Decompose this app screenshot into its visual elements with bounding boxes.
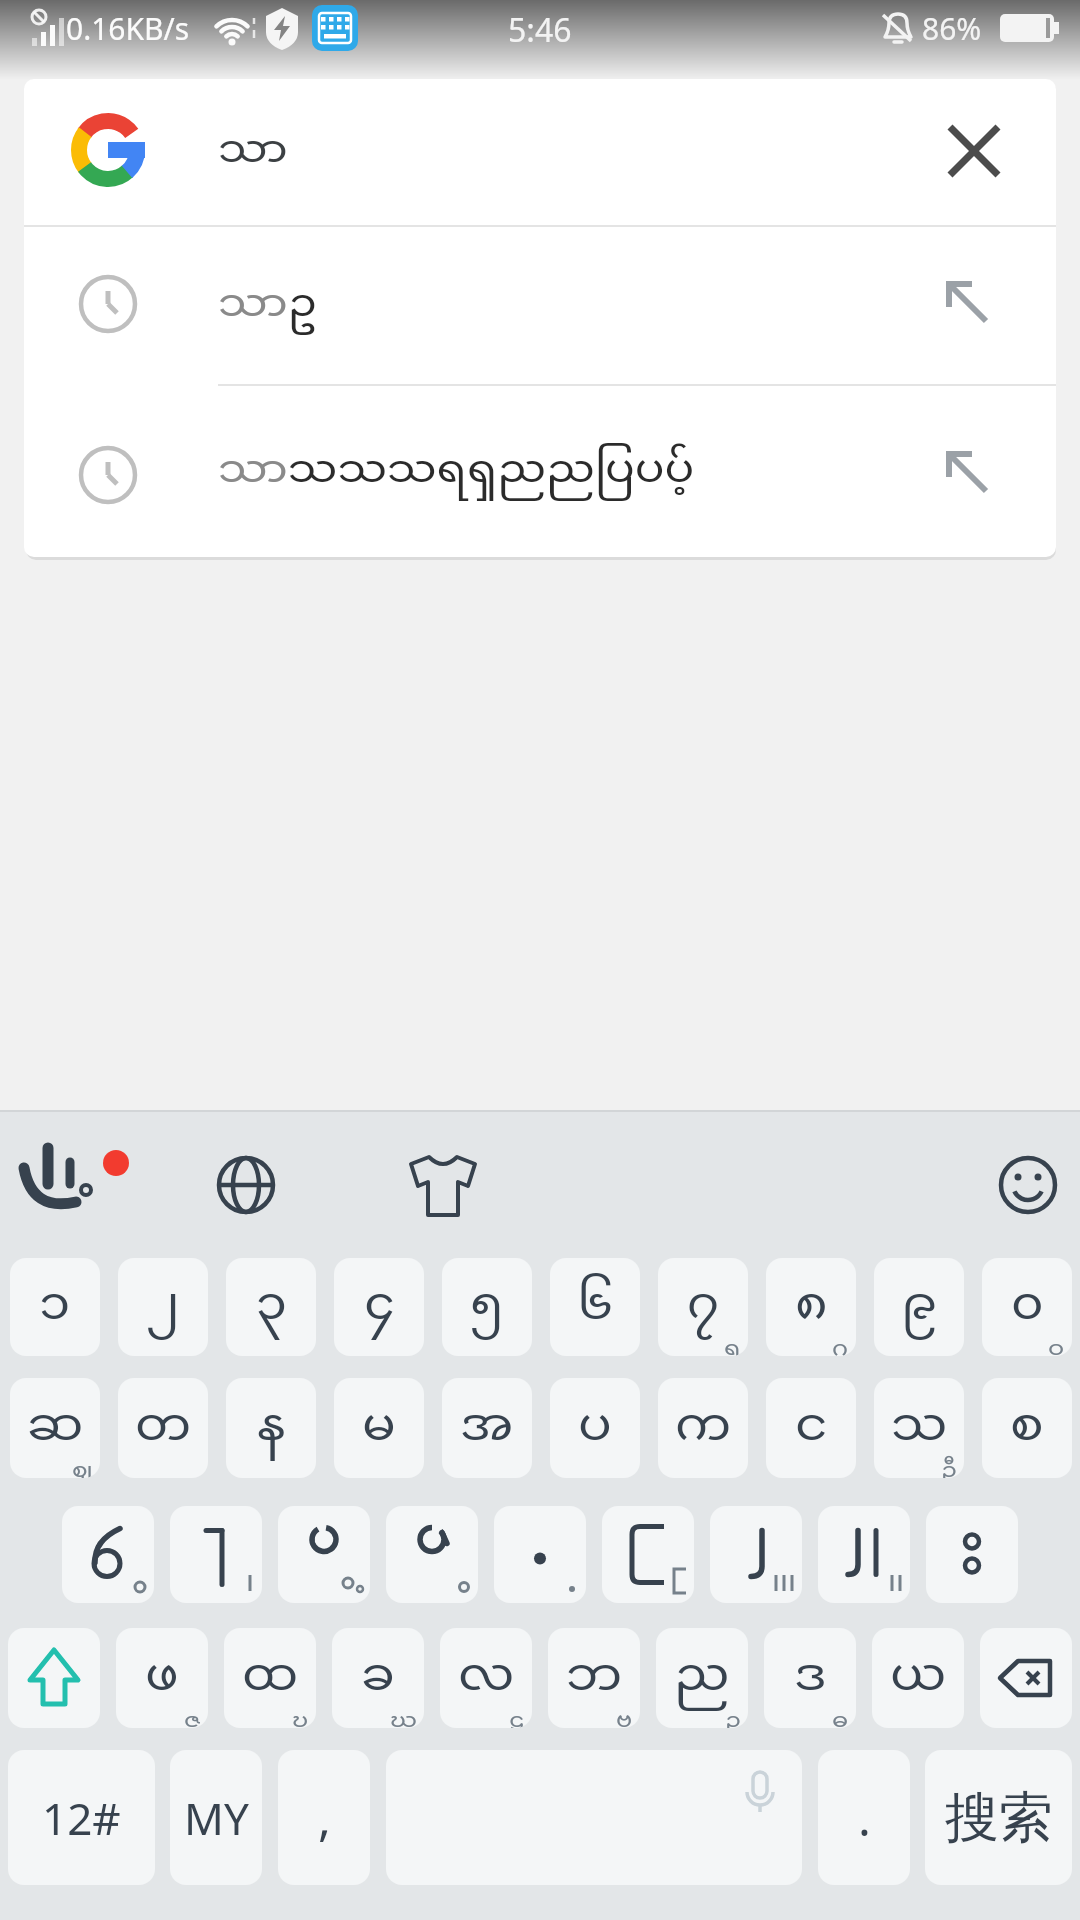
- staticText: ည: [674, 1644, 730, 1712]
- button[interactable]: သ: [874, 1378, 964, 1478]
- button[interactable]: လ: [440, 1628, 532, 1728]
- staticText: လ: [458, 1644, 515, 1712]
- button[interactable]: [214, 1153, 278, 1217]
- staticText: ၈: [795, 1273, 828, 1341]
- button[interactable]: [980, 1628, 1072, 1728]
- staticText: ဖ: [145, 1644, 179, 1712]
- staticText: အ: [460, 1394, 514, 1462]
- button[interactable]: [602, 1506, 694, 1603]
- button[interactable]: ၀: [982, 1258, 1072, 1356]
- button[interactable]: [938, 115, 1010, 187]
- staticText: မ: [362, 1394, 396, 1462]
- button[interactable]: ,: [278, 1750, 370, 1885]
- button[interactable]: ပ: [550, 1378, 640, 1478]
- staticText: ဃ: [390, 1705, 417, 1728]
- staticText: ၄: [364, 1273, 395, 1341]
- button[interactable]: [710, 1506, 802, 1603]
- staticText: ရ: [724, 1333, 741, 1356]
- staticText: ဦ: [941, 1455, 957, 1478]
- staticText: ဠ: [509, 1705, 525, 1728]
- staticText: က: [675, 1394, 732, 1462]
- staticText: 0.16KB/s: [66, 8, 190, 48]
- button[interactable]: [24, 227, 1056, 384]
- button[interactable]: က: [658, 1378, 748, 1478]
- staticText: င: [795, 1394, 828, 1462]
- button[interactable]: ည: [656, 1628, 748, 1728]
- staticText: MY: [184, 1788, 249, 1848]
- staticText: ဂ: [832, 1333, 849, 1356]
- staticText: ၆: [577, 1273, 613, 1341]
- staticText: ၃: [256, 1273, 287, 1341]
- staticText: ဝ: [1048, 1333, 1065, 1356]
- button[interactable]: စ: [982, 1378, 1072, 1478]
- button[interactable]: ၇: [658, 1258, 748, 1356]
- staticText: ၂: [146, 1273, 180, 1341]
- button[interactable]: [494, 1506, 586, 1603]
- staticText: ၇: [687, 1273, 720, 1341]
- button[interactable]: င: [766, 1378, 856, 1478]
- staticText: သာသသသရၡညညပြပပ့်: [218, 442, 695, 502]
- button[interactable]: [996, 1153, 1060, 1217]
- staticText: ၁: [39, 1273, 71, 1341]
- button[interactable]: [408, 1150, 478, 1220]
- button[interactable]: ဆ: [10, 1378, 100, 1478]
- button[interactable]: [24, 79, 938, 225]
- button[interactable]: ၃: [226, 1258, 316, 1356]
- staticText: သာ: [218, 122, 288, 182]
- staticText: ခ: [361, 1644, 395, 1712]
- staticText: ,: [318, 1785, 331, 1850]
- button[interactable]: ၂: [118, 1258, 208, 1356]
- button[interactable]: ထ: [224, 1628, 316, 1728]
- staticText: ဘ: [566, 1644, 623, 1712]
- staticText: ဓ: [832, 1705, 849, 1728]
- staticText: ဈ: [72, 1455, 93, 1478]
- staticText: 12#: [42, 1788, 121, 1848]
- staticText: ထ: [242, 1644, 299, 1712]
- button[interactable]: 搜索: [925, 1750, 1072, 1885]
- button[interactable]: ၅: [442, 1258, 532, 1356]
- button[interactable]: [24, 386, 1056, 557]
- button[interactable]: [926, 1506, 1018, 1603]
- staticText: သာဥ: [218, 276, 317, 336]
- button[interactable]: ဖ: [116, 1628, 208, 1728]
- staticText: 86%: [922, 8, 982, 48]
- staticText: ဆ: [27, 1394, 84, 1462]
- staticText: ဗ: [616, 1705, 633, 1728]
- button[interactable]: မ: [334, 1378, 424, 1478]
- staticText: တ: [135, 1394, 192, 1462]
- staticText: ဇ: [184, 1705, 201, 1728]
- staticText: န: [257, 1394, 286, 1462]
- button[interactable]: ခ: [332, 1628, 424, 1728]
- button[interactable]: .: [818, 1750, 910, 1885]
- button[interactable]: [278, 1506, 370, 1603]
- button[interactable]: ဒ: [764, 1628, 856, 1728]
- button[interactable]: [386, 1506, 478, 1603]
- button[interactable]: [386, 1750, 802, 1885]
- staticText: ဍ: [725, 1705, 741, 1728]
- button[interactable]: အ: [442, 1378, 532, 1478]
- staticText: ၀: [1011, 1273, 1044, 1341]
- button[interactable]: ၆: [550, 1258, 640, 1356]
- button[interactable]: ၈: [766, 1258, 856, 1356]
- staticText: .: [858, 1785, 871, 1850]
- button[interactable]: MY: [170, 1750, 262, 1885]
- button[interactable]: ဘ: [548, 1628, 640, 1728]
- button[interactable]: ၁: [10, 1258, 100, 1356]
- button[interactable]: ယ: [872, 1628, 964, 1728]
- button[interactable]: [8, 1628, 100, 1728]
- button[interactable]: [14, 1140, 124, 1230]
- button[interactable]: တ: [118, 1378, 208, 1478]
- button[interactable]: ၉: [874, 1258, 964, 1356]
- staticText: ဎ: [292, 1705, 309, 1728]
- button[interactable]: [818, 1506, 910, 1603]
- button[interactable]: န: [226, 1378, 316, 1478]
- button[interactable]: [170, 1506, 262, 1603]
- staticText: ယ: [890, 1644, 947, 1712]
- button[interactable]: 12#: [8, 1750, 155, 1885]
- staticText: ဒ: [794, 1644, 826, 1712]
- button[interactable]: [62, 1506, 154, 1603]
- staticText: သ: [891, 1394, 948, 1462]
- button[interactable]: ၄: [334, 1258, 424, 1356]
- staticText: ၉: [901, 1273, 937, 1341]
- staticText: ပ: [578, 1394, 612, 1462]
